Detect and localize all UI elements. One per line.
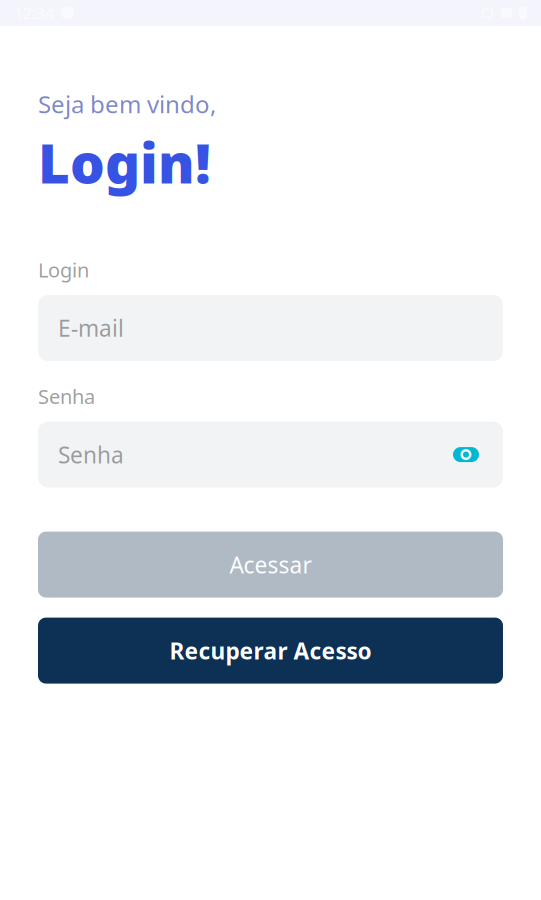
staticText: Senha [58,439,124,470]
button[interactable]: Recuperar Acesso [38,618,503,684]
staticText: E-mail [58,313,124,343]
staticText: Seja bem vindo, [38,88,216,120]
staticText: Acessar [229,549,311,580]
staticText: Login! [38,126,211,198]
button[interactable]: Mostrar senha [449,438,483,472]
staticText: Senha [38,383,95,410]
staticText: Recuperar Acesso [169,635,371,666]
button[interactable]: Acessar [38,532,503,598]
staticText: Login [38,256,89,283]
